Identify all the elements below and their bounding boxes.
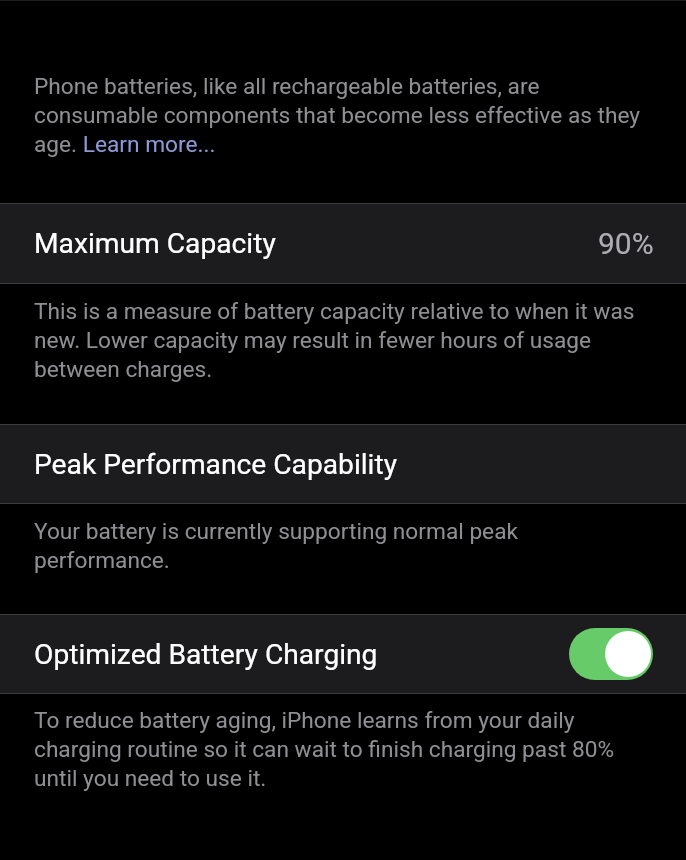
staticText: 90% (598, 226, 654, 261)
staticText: This is a measure of battery capacity re… (34, 296, 645, 383)
staticText: Peak Performance Capability (34, 448, 397, 481)
staticText: Maximum Capacity (34, 227, 276, 260)
staticText: Phone batteries, like all rechargeable b… (34, 71, 645, 158)
staticText: Your battery is currently supporting nor… (34, 516, 645, 574)
button[interactable]: Optimized Battery Charging (0, 615, 686, 693)
button[interactable]: Maximum Capacity (0, 204, 686, 283)
button[interactable]: Peak Performance Capability (0, 425, 686, 503)
staticText: Optimized Battery Charging (34, 638, 378, 671)
button[interactable]: Optimized Battery Charging switch (569, 628, 653, 680)
staticText: To reduce battery aging, iPhone learns f… (34, 705, 645, 792)
